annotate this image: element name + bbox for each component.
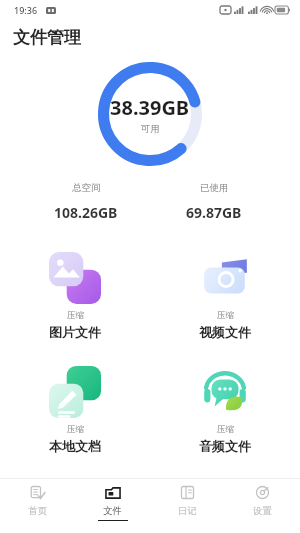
- staticText: 38.39GB: [110, 94, 190, 121]
- other: 首页: [30, 485, 45, 500]
- button[interactable]: 压缩: [0, 248, 150, 342]
- staticText: 本地文档: [49, 438, 101, 454]
- staticText: 首页: [28, 505, 47, 517]
- button[interactable]: 压缩: [150, 248, 300, 342]
- staticText: 压缩: [217, 424, 234, 435]
- button[interactable]: 文件: [75, 479, 150, 525]
- staticText: 文件管理: [13, 27, 81, 48]
- staticText: 总空间: [72, 182, 101, 194]
- staticText: 压缩: [217, 310, 234, 321]
- other: 文件: [105, 485, 121, 501]
- staticText: 音频文件: [199, 438, 251, 454]
- staticText: 视频文件: [199, 324, 251, 340]
- staticText: 69.87GB: [186, 203, 242, 222]
- staticText: 设置: [253, 505, 272, 517]
- staticText: 日记: [178, 505, 197, 517]
- other: 日记: [180, 485, 195, 500]
- staticText: 压缩: [67, 424, 84, 435]
- staticText: 已使用: [200, 182, 229, 194]
- button[interactable]: 设置: [225, 479, 300, 525]
- staticText: 108.26GB: [54, 203, 118, 222]
- staticText: 19:36: [14, 4, 38, 16]
- staticText: 压缩: [67, 310, 84, 321]
- staticText: 图片文件: [49, 324, 101, 340]
- button[interactable]: 压缩: [150, 362, 300, 456]
- button[interactable]: 日记: [150, 479, 225, 525]
- staticText: 可用: [141, 123, 160, 135]
- other: 设置: [255, 485, 270, 500]
- button[interactable]: 首页: [0, 479, 75, 525]
- button[interactable]: 压缩: [0, 362, 150, 456]
- staticText: 文件: [103, 505, 122, 517]
